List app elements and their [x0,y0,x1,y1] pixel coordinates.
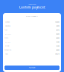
staticText: Tax [4,29,7,31]
staticText: Rewards [4,49,11,51]
staticText: $4.99 [55,25,59,27]
staticText: Service [4,41,10,43]
staticText: Confirm payment [19,6,45,9]
staticText: $0.00 [55,37,59,39]
staticText: $45.14 [54,53,59,55]
staticText: Credit [4,45,8,47]
staticText: Total [4,53,7,55]
staticText: -$5.00 [55,33,59,35]
staticText: Discount [4,33,10,35]
staticText: Subtotal [4,21,9,23]
staticText: Fees [4,37,8,39]
staticText: Shipping [4,25,10,27]
staticText: -$1.00 [55,45,59,47]
staticText: $0.00 [55,49,59,51]
staticText: Checkout [28,4,35,5]
staticText: $3.15 [55,29,59,31]
staticText: Pay now [29,67,35,69]
button[interactable]: Pay now [4,65,59,70]
staticText: $42.00 [54,21,59,23]
staticText: Order summary [26,16,38,17]
staticText: $1.00 [55,41,59,43]
